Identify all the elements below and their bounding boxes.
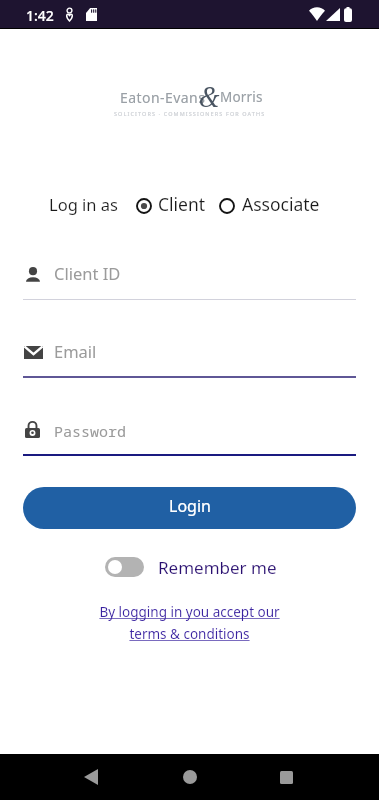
staticText: Login (169, 495, 211, 517)
button[interactable]: Login (23, 487, 356, 529)
button[interactable]: Back (72, 758, 110, 796)
staticText: Log in as (49, 193, 118, 215)
staticText: Password (54, 421, 127, 441)
button[interactable]: Client (136, 194, 206, 218)
staticText: Remember me (158, 556, 277, 579)
button[interactable]: Recent apps (267, 758, 305, 796)
button[interactable]: Home (171, 758, 209, 796)
staticText: 1:42 (26, 6, 54, 25)
staticText: Client (158, 192, 206, 216)
button[interactable]: By logging in you accept our terms & con… (99, 603, 280, 643)
staticText: Client ID (54, 262, 121, 284)
staticText: Associate (242, 192, 320, 216)
button[interactable]: Remember me (105, 557, 144, 577)
button[interactable]: Associate (219, 194, 320, 218)
staticText: Eaton-Evans (120, 88, 206, 107)
staticText: SOLICITORS · COMMISSIONERS FOR OATHS (114, 110, 266, 117)
staticText: & (199, 78, 220, 115)
staticText: Morris (220, 88, 263, 106)
staticText: Email (54, 340, 97, 362)
